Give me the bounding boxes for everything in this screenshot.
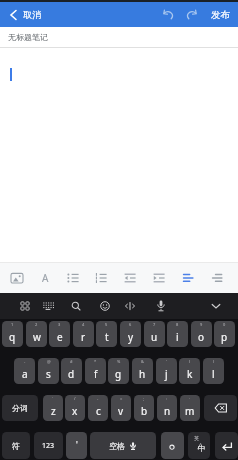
button[interactable] (144, 262, 173, 293)
button[interactable]: @ (38, 358, 59, 384)
button[interactable] (39, 297, 57, 315)
staticText: u (151, 330, 158, 344)
button[interactable]: 分词 (2, 395, 38, 421)
staticText: h (139, 367, 146, 381)
button[interactable]: 0 (214, 321, 235, 347)
staticText: g (115, 367, 122, 381)
button[interactable]: : (157, 395, 177, 421)
staticText: y (128, 330, 134, 344)
button[interactable]: ) (203, 358, 224, 384)
staticText: 123 (42, 441, 55, 451)
button[interactable] (215, 432, 238, 459)
staticText: r (81, 330, 86, 344)
button[interactable] (3, 262, 31, 293)
button[interactable]: * (85, 358, 106, 384)
button[interactable]: 4 (73, 321, 94, 347)
staticText: - (24, 359, 26, 364)
button[interactable]: ( (179, 358, 200, 384)
staticText: - (97, 396, 99, 401)
staticText: 取消 (23, 9, 41, 20)
button[interactable]: 7 (144, 321, 165, 347)
staticText: d (68, 367, 75, 381)
staticText: 发布 (211, 9, 230, 21)
button[interactable]: 123 (34, 432, 63, 459)
button[interactable]: - (88, 395, 108, 421)
staticText: 0 (223, 322, 226, 327)
button[interactable] (173, 262, 202, 293)
staticText: 无标题笔记 (8, 32, 48, 42)
staticText: j (165, 367, 168, 381)
staticText: 7 (153, 322, 156, 327)
button[interactable]: 3 (49, 321, 70, 347)
button[interactable] (204, 395, 237, 421)
staticText: a (22, 367, 28, 381)
staticText: # (70, 359, 73, 364)
button[interactable] (202, 262, 231, 293)
button[interactable]: 空格 (90, 432, 156, 459)
button[interactable]: % (108, 358, 129, 384)
button[interactable]: 1 (2, 321, 23, 347)
button[interactable]: & (132, 358, 153, 384)
staticText: : (166, 396, 168, 401)
staticText: s (46, 367, 51, 381)
staticText: f (94, 367, 98, 381)
staticText: m (185, 404, 195, 418)
button[interactable] (161, 8, 175, 22)
button[interactable] (152, 297, 170, 315)
button[interactable] (207, 297, 225, 315)
staticText: 9 (200, 322, 203, 327)
button[interactable] (59, 262, 87, 293)
staticText: · (189, 396, 191, 401)
button[interactable]: ' (66, 432, 87, 459)
staticText: 6 (129, 322, 132, 327)
button[interactable]: A (31, 262, 59, 293)
button[interactable]: ` (43, 395, 63, 421)
staticText: q (9, 330, 16, 344)
button[interactable]: 符 (2, 432, 30, 459)
button[interactable]: ; (134, 395, 154, 421)
button[interactable]: · (180, 395, 200, 421)
button[interactable] (96, 297, 114, 315)
button[interactable]: 2 (26, 321, 47, 347)
staticText: x (72, 404, 78, 418)
staticText: 2 (35, 322, 38, 327)
button[interactable]: ' (156, 358, 177, 384)
button[interactable] (121, 297, 139, 315)
staticText: i (176, 330, 179, 344)
button[interactable]: / (65, 395, 85, 421)
button[interactable] (67, 297, 85, 315)
button[interactable]: 英 (188, 432, 210, 459)
staticText: A (42, 271, 49, 285)
staticText: v (118, 404, 124, 418)
staticText: t (105, 330, 109, 344)
button[interactable]: 取消 (0, 2, 238, 27)
button[interactable]: - (14, 358, 35, 384)
staticText: ' (76, 439, 78, 450)
staticText: n (164, 404, 171, 418)
button[interactable] (161, 432, 184, 459)
staticText: o (198, 330, 205, 344)
button[interactable]: 9 (191, 321, 212, 347)
button[interactable] (115, 262, 144, 293)
staticText: 3 (58, 322, 61, 327)
staticText: = (120, 396, 123, 401)
button[interactable]: 5 (96, 321, 117, 347)
button[interactable]: # (61, 358, 82, 384)
button[interactable] (87, 262, 115, 293)
button[interactable] (185, 8, 199, 22)
button[interactable]: 6 (120, 321, 141, 347)
button[interactable] (16, 297, 34, 315)
staticText: ; (143, 396, 145, 401)
staticText: 中 (198, 444, 206, 453)
staticText: 5 (105, 322, 108, 327)
staticText: l (212, 367, 215, 381)
staticText: b (141, 404, 148, 418)
staticText: 8 (176, 322, 179, 327)
staticText: p (221, 330, 228, 344)
button[interactable]: 发布 (211, 9, 238, 21)
button[interactable]: = (111, 395, 131, 421)
staticText: ( (189, 359, 191, 364)
staticText: k (187, 367, 193, 381)
staticText: 英 (194, 435, 199, 441)
button[interactable]: 8 (167, 321, 188, 347)
